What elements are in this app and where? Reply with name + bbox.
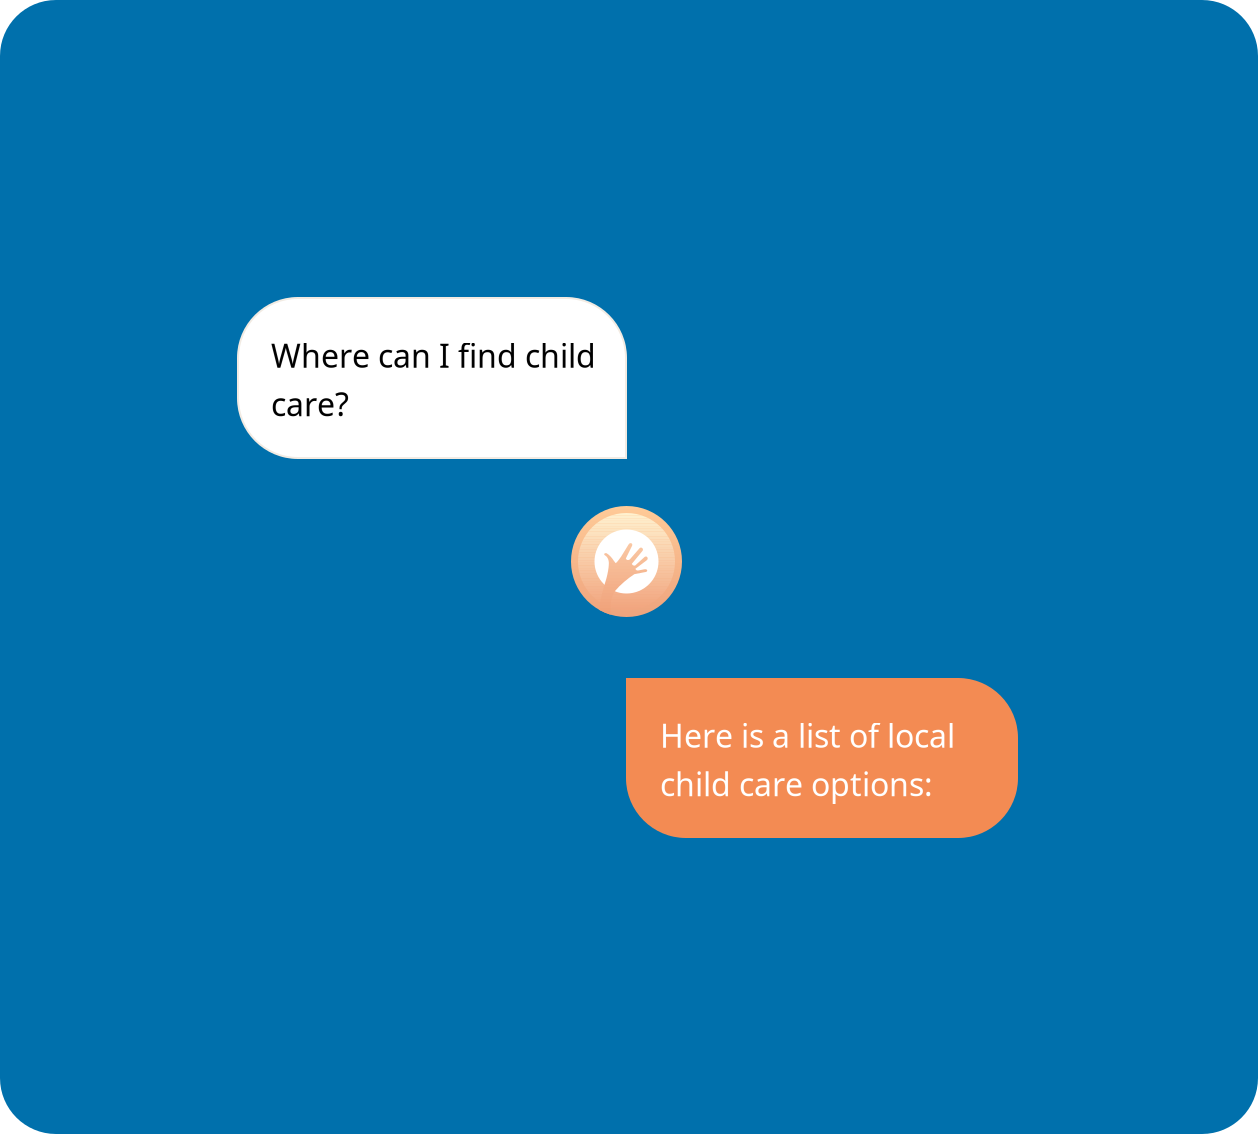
staticText: Here is a list of local <box>660 714 955 756</box>
button[interactable]: Here is a list of local <box>626 678 1018 838</box>
button[interactable]: Where can I find child <box>238 298 626 458</box>
staticText: care? <box>271 382 349 425</box>
staticText: child care options: <box>660 762 933 805</box>
button[interactable]: Assistant <box>571 506 682 617</box>
staticText: Where can I find child <box>271 334 596 376</box>
